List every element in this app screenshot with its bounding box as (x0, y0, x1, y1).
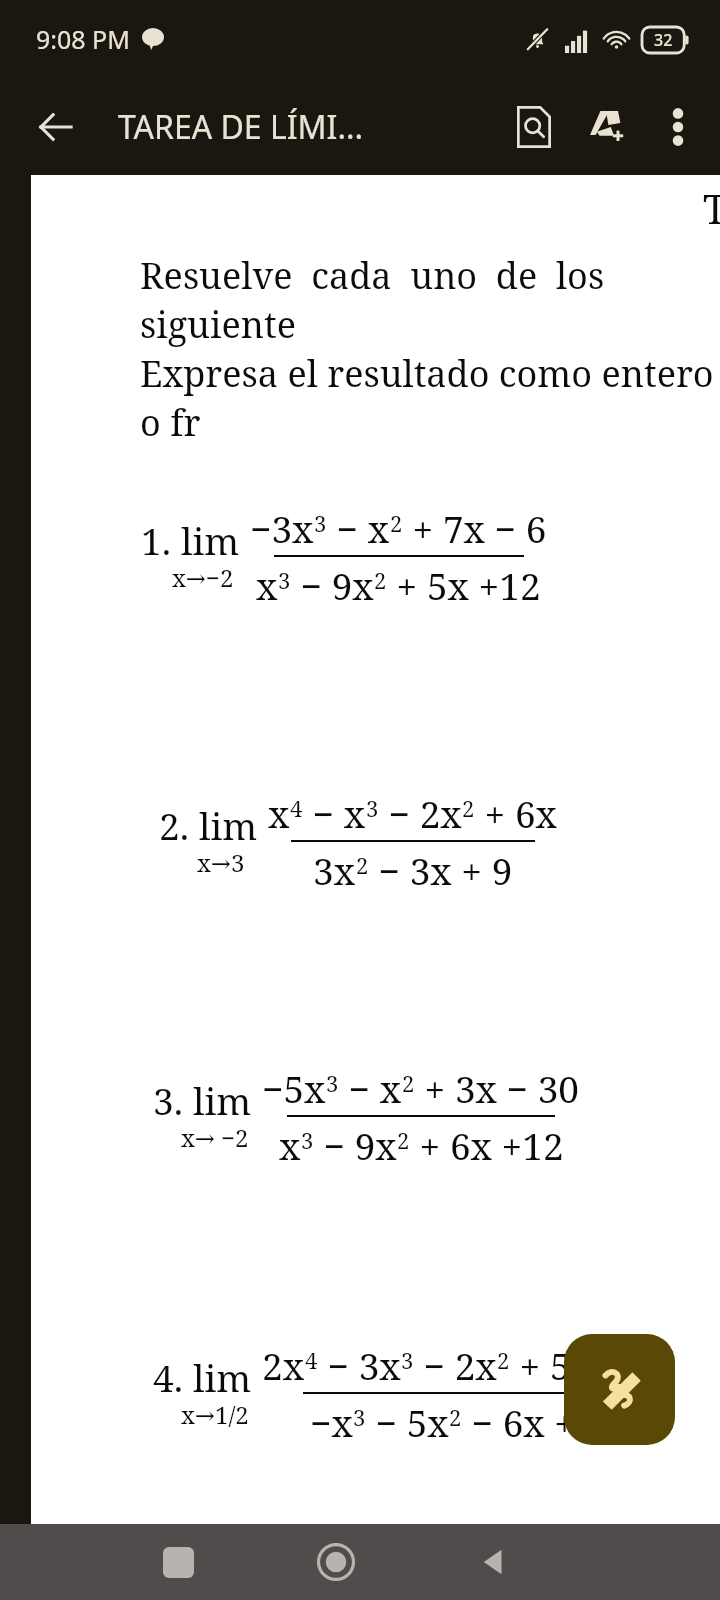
staticText: 3 (301, 1125, 314, 1155)
staticText: − 3x (318, 1340, 401, 1390)
staticText: 2 (390, 508, 403, 538)
staticText: −5x (262, 1063, 326, 1113)
button[interactable]: Back (456, 1524, 532, 1600)
staticText: Expresa el resultado como entero o fr (140, 349, 720, 447)
staticText: + 5x − 2 (510, 1340, 654, 1390)
staticText: 2 (356, 850, 369, 880)
button[interactable]: Recents (140, 1524, 216, 1600)
staticText: lim (193, 1352, 252, 1402)
staticText: x→3 (197, 846, 245, 879)
staticText: x→ −2 (181, 1121, 249, 1154)
staticText: + 6x (475, 788, 557, 838)
staticText: − 3x + 9 (369, 845, 513, 895)
staticText: 4 (305, 1345, 318, 1375)
staticText: 3 (401, 1345, 414, 1375)
staticText: − 9x (314, 1120, 397, 1170)
staticText: 2 (497, 1345, 510, 1375)
staticText: 1. (141, 515, 181, 565)
staticText: − 2x (414, 1340, 497, 1390)
staticText: − 5x (366, 1397, 449, 1447)
button[interactable]: Edit (564, 1334, 675, 1445)
staticText: + 7x − 6 (403, 503, 547, 553)
staticText: −x (310, 1397, 353, 1447)
staticText: TAREA DE LÍMI... (118, 105, 364, 149)
staticText: x (268, 788, 290, 838)
staticText: x→−2 (172, 561, 234, 594)
staticText: −3x (250, 503, 314, 553)
button[interactable]: Back (20, 91, 92, 163)
staticText: x (256, 560, 278, 610)
staticText: 4. (153, 1352, 193, 1402)
staticText: 2 (402, 1068, 415, 1098)
staticText: 32 (654, 29, 673, 51)
staticText: 2. (159, 800, 199, 850)
staticText: − x (327, 503, 390, 553)
staticText: x→1/2 (181, 1398, 249, 1431)
staticText: + 6x +12 (410, 1120, 564, 1170)
staticText: lim (181, 515, 240, 565)
staticText: 3 (314, 508, 327, 538)
staticText: − x (339, 1063, 402, 1113)
staticText: 2x (262, 1340, 305, 1390)
staticText: 3 (366, 793, 379, 823)
staticText: T (703, 181, 720, 235)
button[interactable]: Add to Drive (570, 91, 642, 163)
staticText: 3 (278, 565, 291, 595)
staticText: 3 (326, 1068, 339, 1098)
button[interactable]: Home (298, 1524, 374, 1600)
button[interactable]: Find in document (498, 91, 570, 163)
staticText: − 6x + 7 (462, 1397, 606, 1447)
button[interactable]: More options (642, 91, 714, 163)
staticText: 2 (449, 1402, 462, 1432)
staticText: 3. (153, 1075, 193, 1125)
staticText: − 2x (379, 788, 462, 838)
staticText: + 5x +12 (387, 560, 541, 610)
staticText: Resuelve cada uno de los siguiente (140, 251, 720, 349)
staticText: − 9x (291, 560, 374, 610)
staticText: 2 (397, 1125, 410, 1155)
staticText: 3x (313, 845, 356, 895)
staticText: 2 (374, 565, 387, 595)
staticText: 4 (290, 793, 303, 823)
staticText: lim (199, 800, 258, 850)
staticText: 3 (353, 1402, 366, 1432)
staticText: lim (193, 1075, 252, 1125)
staticText: + 3x − 30 (415, 1063, 580, 1113)
staticText: 2 (462, 793, 475, 823)
staticText: 9:08 PM (36, 22, 130, 56)
staticText: − x (303, 788, 366, 838)
staticText: x (279, 1120, 301, 1170)
